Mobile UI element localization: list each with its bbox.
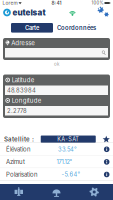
button[interactable]: Coordonnées — [53, 23, 100, 33]
button[interactable]: Satellite — [0, 184, 38, 200]
button[interactable]: Azimut — [0, 156, 113, 168]
staticText: Longitude — [12, 97, 42, 104]
staticText: eutelsat — [12, 8, 45, 17]
staticText: Élévation — [6, 146, 31, 153]
staticText: Latitude — [12, 76, 35, 84]
button[interactable]: Settings — [99, 8, 109, 17]
staticText: -5.64° — [61, 171, 80, 178]
staticText: ok — [54, 61, 59, 67]
staticText: Adresse — [11, 39, 35, 47]
staticText: 171.12° — [56, 158, 72, 165]
button[interactable]: Polarisation — [0, 168, 113, 181]
staticText: Carte — [25, 24, 39, 31]
staticText: 8:41 — [52, 0, 62, 6]
button[interactable]: Add to favourites — [102, 135, 110, 143]
button[interactable]: KA-SAT — [41, 135, 96, 143]
button[interactable]: 48.83984 — [5, 85, 108, 95]
button[interactable]: Pointing — [38, 184, 75, 200]
button[interactable] — [5, 48, 108, 57]
button[interactable]: Carte — [11, 23, 53, 33]
staticText: 100% — [91, 0, 103, 6]
staticText: Coordonnées — [57, 24, 96, 31]
button[interactable]: Signal strength — [68, 8, 77, 16]
button[interactable]: Settings — [75, 184, 113, 200]
staticText: Satellite : — [4, 135, 34, 143]
staticText: 48.83984 — [7, 87, 36, 94]
staticText: Polarisation — [6, 171, 38, 178]
staticText: 2.2778 — [7, 107, 27, 114]
button[interactable]: Élévation — [0, 143, 113, 156]
staticText: Azimut — [6, 158, 25, 166]
staticText: Lorem — [2, 0, 17, 6]
staticText: 33.54° — [58, 146, 77, 153]
staticText: KA-SAT — [57, 136, 79, 143]
button[interactable]: 2.2778 — [5, 106, 108, 115]
